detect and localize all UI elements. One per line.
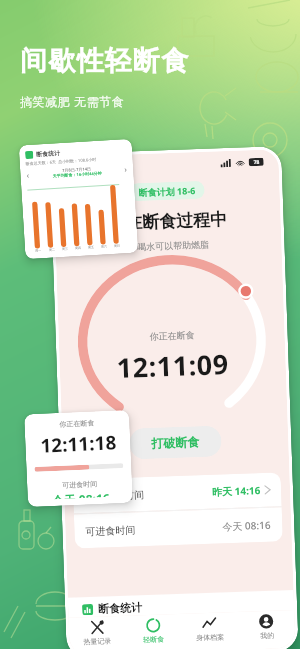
staticText: 断食总天数：6天 总小时数：108.6小时 (26, 157, 97, 166)
staticText: 断食统计 (36, 149, 60, 158)
staticText: 周一 (35, 248, 41, 253)
staticText: 周四 (75, 246, 81, 250)
staticText: 打破断食 (151, 434, 200, 451)
button[interactable]: › (124, 163, 128, 174)
staticText: 可进食时间 (85, 523, 136, 538)
button[interactable]: Profile (237, 610, 296, 649)
staticText: 今天 08:16 (51, 490, 110, 499)
staticText: 搞笑减肥 无需节食 (20, 93, 125, 109)
staticText: 我的 (260, 631, 274, 640)
staticText: 断食计划 18-6 (138, 184, 196, 198)
staticText: 78 (254, 159, 260, 166)
staticText: 周三 (62, 247, 68, 251)
staticText: 7月8日-7月14日 (62, 166, 91, 173)
button[interactable]: 打破断食 (129, 425, 222, 460)
button[interactable]: 开始断食时间 (73, 472, 282, 513)
staticText: 开始断食时间 (84, 488, 144, 503)
staticText: 身体档案 (196, 632, 224, 642)
button[interactable]: 可进食时间 (74, 507, 283, 548)
staticText: 断食统计 (98, 600, 142, 616)
staticText: 你正在断食 (149, 329, 195, 342)
staticText: 12:11:18 (40, 429, 117, 459)
staticText: 周日 (114, 244, 120, 248)
staticText: 周二 (49, 247, 55, 252)
staticText: 你正在断食 (59, 418, 95, 429)
staticText: 正在断食过程中 (54, 207, 281, 236)
button[interactable]: 断食计划 18-6 (129, 181, 205, 201)
button[interactable]: ‹ (26, 169, 30, 180)
staticText: 今天 08:16 (222, 518, 272, 533)
staticText: 昨天 14:16 (212, 483, 261, 499)
staticText: 热量记录 (83, 636, 111, 646)
staticText: 间歇性轻断食 (20, 44, 190, 78)
staticText: 多喝水可以帮助燃脂 (55, 236, 282, 255)
button[interactable]: Body profile (180, 612, 239, 649)
button[interactable]: Calorie log (68, 616, 126, 649)
staticText: 周六 (101, 244, 107, 249)
staticText: 轻断食 (143, 634, 164, 644)
staticText: 可进食时间 (62, 479, 97, 490)
staticText: 天平均断食：16小时44分钟 (52, 170, 103, 178)
staticText: 周五 (88, 245, 94, 249)
staticText: 12:11:09 (116, 345, 229, 386)
button[interactable]: Fasting (124, 614, 182, 649)
